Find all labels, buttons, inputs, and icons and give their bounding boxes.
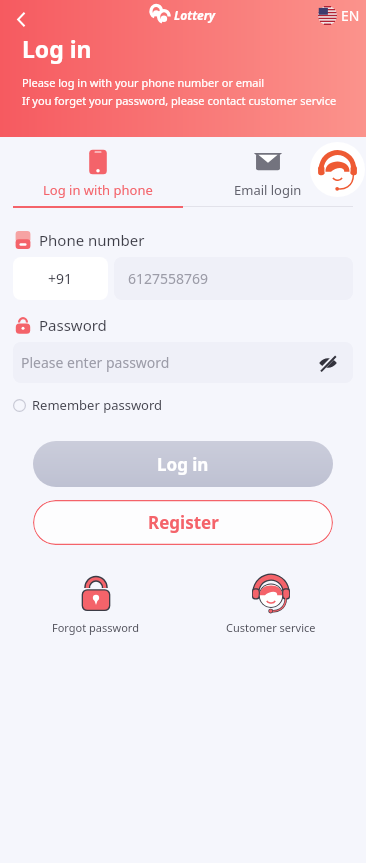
button[interactable]: Customer service — [183, 572, 358, 635]
button[interactable]: +91 — [13, 257, 108, 300]
staticText: Log in — [22, 33, 92, 64]
staticText: 6127558769 — [128, 269, 209, 288]
button[interactable]: Show password — [315, 350, 341, 376]
staticText: Email login — [234, 181, 302, 199]
staticText: Remember password — [32, 396, 163, 414]
staticText: EN — [341, 6, 360, 25]
button[interactable]: Register — [33, 500, 333, 545]
button[interactable]: Email login — [183, 147, 353, 206]
staticText: Please enter password — [21, 353, 315, 372]
button[interactable]: Log in — [33, 441, 333, 487]
button[interactable]: Customer service — [310, 142, 365, 197]
button[interactable]: Please enter password — [13, 342, 353, 383]
button[interactable]: Log in with phone — [13, 147, 183, 206]
button[interactable]: 6127558769 — [114, 257, 353, 300]
staticText: Register — [148, 511, 219, 534]
button[interactable]: EN — [318, 6, 360, 25]
staticText: +91 — [48, 269, 73, 288]
staticText: Phone number — [39, 230, 145, 250]
button[interactable]: Remember password — [13, 390, 366, 420]
button[interactable]: Back — [4, 2, 38, 36]
button[interactable]: Forgot password — [8, 572, 183, 635]
staticText: Log in with phone — [43, 181, 153, 199]
staticText: Please log in with your phone number or … — [22, 75, 265, 90]
staticText: If you forget your password, please cont… — [22, 93, 337, 108]
staticText: Forgot password — [52, 620, 139, 635]
staticText: Log in — [157, 453, 209, 476]
staticText: Lottery — [174, 7, 216, 23]
staticText: Password — [39, 315, 107, 335]
staticText: Customer service — [226, 620, 316, 635]
